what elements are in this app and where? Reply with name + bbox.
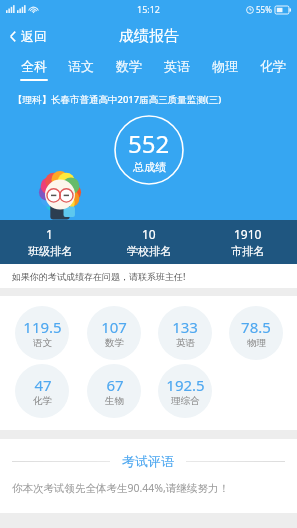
staticText: 语文 (68, 58, 94, 74)
staticText: 133 (172, 317, 198, 337)
staticText: 552 (128, 127, 170, 160)
staticText: 全科 (21, 58, 47, 74)
staticText: 1910 (234, 226, 262, 242)
staticText: 107 (101, 317, 127, 337)
button[interactable]: 133 (158, 306, 212, 360)
staticText: 如果你的考试成绩存在问题，请联系班主任! (12, 270, 186, 282)
button[interactable]: 1910 (198, 220, 297, 264)
button[interactable]: 数学 (105, 54, 153, 88)
button[interactable]: 英语 (153, 54, 201, 88)
button[interactable]: 67 (87, 364, 141, 418)
button[interactable]: 107 (87, 306, 141, 360)
staticText: 返回 (21, 28, 47, 44)
staticText: 55% (256, 4, 272, 15)
staticText: 47 (34, 375, 52, 395)
staticText: 你本次考试领先全体考生90.44%,请继续努力！ (12, 481, 297, 495)
staticText: 总成绩 (133, 160, 166, 174)
staticText: 10 (142, 226, 156, 242)
button[interactable]: 返回 (0, 22, 59, 50)
staticText: 67 (106, 375, 124, 395)
staticText: 192.5 (166, 375, 205, 395)
button[interactable]: 1 (0, 220, 99, 264)
staticText: 数学 (105, 337, 124, 349)
button[interactable]: 化学 (249, 54, 297, 88)
staticText: 1 (46, 226, 53, 242)
staticText: 班级排名 (28, 244, 72, 258)
staticText: 物理 (212, 58, 238, 74)
button[interactable]: 192.5 (158, 364, 212, 418)
staticText: 考试评语 (122, 453, 174, 469)
staticText: 理综合 (171, 395, 200, 407)
staticText: 78.5 (241, 317, 271, 337)
staticText: 物理 (247, 337, 266, 349)
staticText: 生物 (105, 395, 124, 407)
staticText: 化学 (260, 58, 286, 74)
staticText: 语文 (33, 337, 52, 349)
staticText: 化学 (33, 395, 52, 407)
staticText: 数学 (116, 58, 142, 74)
staticText: 成绩报告 (119, 27, 179, 46)
button[interactable]: 78.5 (229, 306, 283, 360)
button[interactable]: 119.5 (15, 306, 69, 360)
button[interactable]: 全科 (10, 54, 57, 88)
staticText: 119.5 (23, 317, 62, 337)
staticText: 15:12 (137, 3, 161, 15)
staticText: 英语 (176, 337, 195, 349)
staticText: 学校排名 (127, 244, 171, 258)
staticText: 英语 (164, 58, 190, 74)
button[interactable]: 47 (15, 364, 69, 418)
staticText: 【理科】长春市普通高中2017届高三质量监测(三) (13, 93, 222, 106)
button[interactable]: 语文 (57, 54, 105, 88)
staticText: 市排名 (231, 244, 264, 258)
button[interactable]: 10 (99, 220, 198, 264)
button[interactable]: 物理 (201, 54, 249, 88)
